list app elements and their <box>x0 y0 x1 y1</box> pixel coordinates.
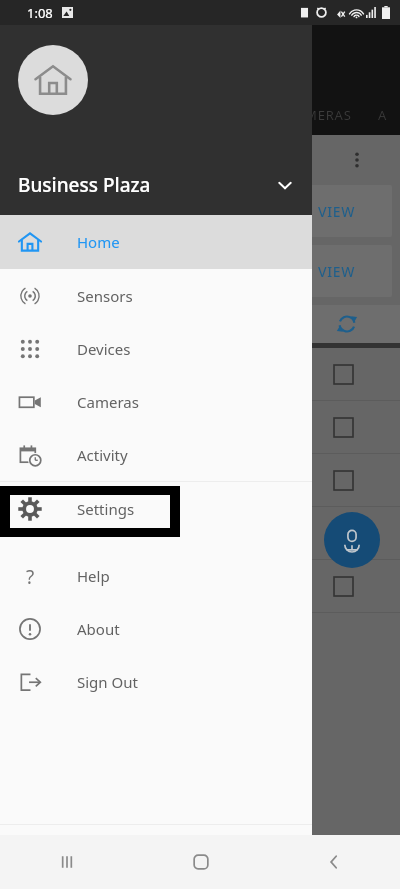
staticText: A <box>378 106 388 124</box>
staticText: VIEW <box>318 262 355 281</box>
button[interactable]: Recent apps <box>0 835 134 889</box>
other: Select item <box>334 365 353 384</box>
staticText: Activity <box>77 445 128 465</box>
button[interactable]: Cameras <box>0 375 312 428</box>
other: More options <box>348 151 366 169</box>
button[interactable]: VIEW <box>0 245 392 297</box>
button[interactable]: Voice command <box>324 512 380 568</box>
button[interactable]: Select item <box>0 507 400 560</box>
staticText: Help <box>77 566 110 586</box>
button[interactable]: Back <box>267 835 400 889</box>
button[interactable]: Select item <box>0 401 400 454</box>
staticText: Devices <box>77 339 131 359</box>
staticText: Cameras <box>77 392 139 412</box>
other: Select item <box>334 418 353 437</box>
button[interactable]: Settings <box>0 482 312 536</box>
button[interactable]: Activity <box>0 428 312 481</box>
other: Select item <box>334 471 353 490</box>
button[interactable]: Business Plaza <box>0 155 312 215</box>
button[interactable]: VIEW <box>0 185 392 237</box>
staticText: Settings <box>77 499 135 519</box>
button[interactable]: Select item <box>0 560 400 613</box>
button[interactable]: ? <box>0 549 312 602</box>
button[interactable]: A <box>372 106 394 124</box>
staticText: Sensors <box>77 286 133 306</box>
button[interactable]: Home <box>134 835 267 889</box>
staticText: ? <box>26 564 35 588</box>
button[interactable]: Select item <box>0 454 400 507</box>
staticText: Home <box>77 232 120 252</box>
button[interactable]: AMERAS <box>290 106 358 124</box>
button[interactable]: About <box>0 602 312 655</box>
other: Select item <box>334 577 353 596</box>
other: Expand locations <box>276 176 294 194</box>
button[interactable]: Devices <box>0 322 312 375</box>
staticText: 1:08 <box>27 4 53 22</box>
button[interactable]: Sensors <box>0 269 312 322</box>
other: Refresh <box>336 313 358 335</box>
staticText: Sign Out <box>77 672 138 692</box>
other: Select item <box>334 524 353 543</box>
staticText: About <box>77 619 120 639</box>
button[interactable]: Refresh <box>0 305 400 343</box>
button[interactable]: Home <box>0 215 312 269</box>
button[interactable]: Sign Out <box>0 655 312 708</box>
staticText: VIEW <box>318 202 355 221</box>
button[interactable]: Select item <box>0 348 400 401</box>
staticText: Business Plaza <box>18 172 151 198</box>
staticText: AMERAS <box>296 106 352 124</box>
